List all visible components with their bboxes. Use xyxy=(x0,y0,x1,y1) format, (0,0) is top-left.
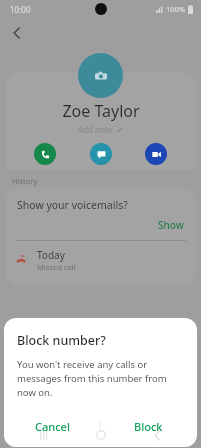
staticText: Cancel xyxy=(35,419,70,434)
staticText: Block number? xyxy=(17,332,106,349)
button[interactable]: Show xyxy=(158,218,184,232)
staticText: 100% xyxy=(166,4,186,14)
button[interactable]: Back xyxy=(144,422,170,448)
button[interactable]: Message xyxy=(90,143,112,165)
button[interactable]: Show your voicemails? xyxy=(5,188,196,240)
staticText: Today xyxy=(37,248,65,262)
button[interactable]: Call xyxy=(34,143,56,165)
button[interactable]: Block xyxy=(100,411,197,441)
staticText: Add note xyxy=(78,124,113,135)
button[interactable]: Today xyxy=(5,241,196,279)
button[interactable]: Contact photo xyxy=(78,53,123,98)
staticText: Missed call xyxy=(37,262,76,272)
button[interactable]: Add note xyxy=(78,124,123,135)
staticText: 10:00 xyxy=(10,4,31,15)
staticText: Zoe Taylor xyxy=(62,100,140,122)
staticText: History xyxy=(12,176,38,186)
button[interactable]: Home xyxy=(88,422,114,448)
button[interactable]: Recents xyxy=(31,422,57,448)
button[interactable]: Video call xyxy=(145,143,167,165)
staticText: You won't receive any calls or messages … xyxy=(17,358,187,399)
button[interactable]: Cancel xyxy=(4,411,100,441)
staticText: Show your voicemails? xyxy=(17,198,128,212)
staticText: Block xyxy=(134,419,163,434)
button[interactable]: Back xyxy=(4,20,30,46)
